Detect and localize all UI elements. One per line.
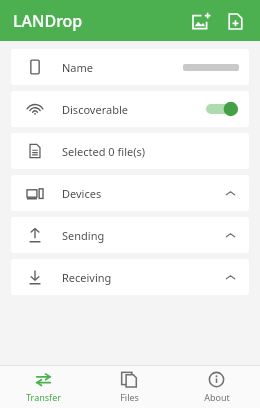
- staticText: Name: [62, 60, 94, 75]
- staticText: Devices: [62, 186, 102, 201]
- button[interactable]: Devices: [11, 175, 249, 211]
- button[interactable]: Files: [86, 366, 173, 408]
- staticText: Discoverable: [62, 102, 128, 117]
- button[interactable]: Receiving: [11, 259, 249, 295]
- button[interactable]: Add image: [184, 4, 218, 38]
- button[interactable]: Selected 0 file(s): [11, 133, 249, 169]
- button[interactable]: [205, 99, 239, 119]
- staticText: About: [204, 391, 230, 403]
- staticText: LANDrop: [13, 10, 83, 32]
- staticText: Selected 0 file(s): [62, 144, 146, 159]
- staticText: Sending: [62, 228, 105, 243]
- button[interactable]: Transfer: [0, 366, 86, 408]
- staticText: Transfer: [26, 391, 61, 403]
- button[interactable]: Discoverable: [11, 91, 249, 127]
- staticText: Files: [120, 391, 139, 403]
- button[interactable]: About: [173, 366, 260, 408]
- button[interactable]: Sending: [11, 217, 249, 253]
- staticText: Receiving: [62, 270, 112, 285]
- button[interactable]: Add file: [218, 4, 252, 38]
- button[interactable]: Name: [11, 49, 249, 85]
